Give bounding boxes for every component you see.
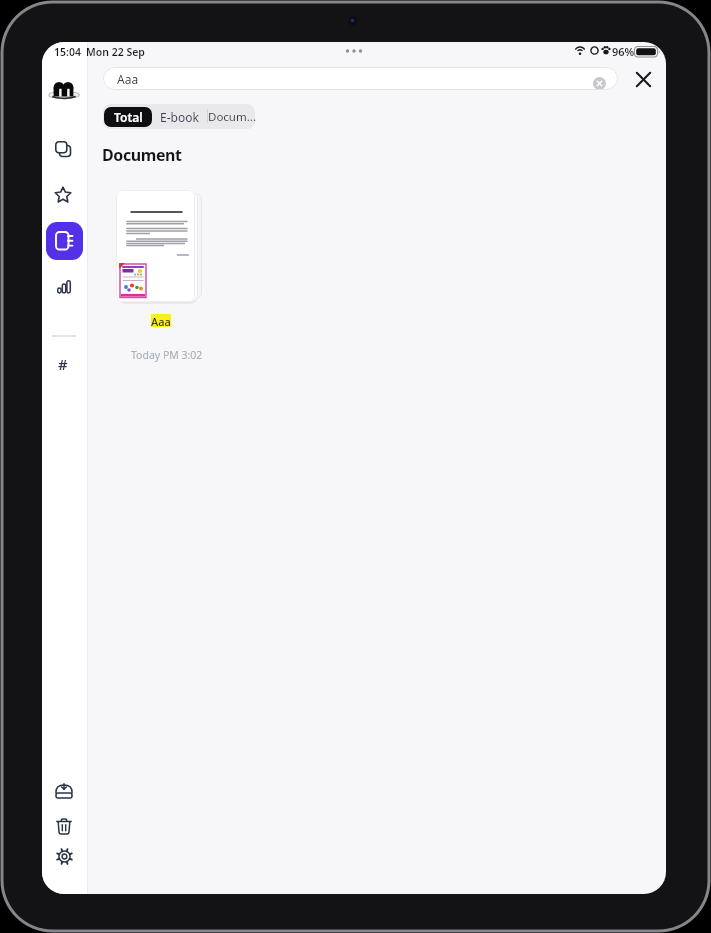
- staticText: 96%: [612, 44, 635, 59]
- button[interactable]: #: [58, 354, 68, 374]
- staticText: Document: [102, 144, 182, 166]
- button[interactable]: [46, 222, 83, 260]
- button[interactable]: [48, 80, 81, 100]
- button[interactable]: [55, 783, 73, 799]
- staticText: Total: [114, 109, 143, 125]
- button[interactable]: [56, 818, 72, 835]
- button[interactable]: Docum...: [205, 104, 259, 129]
- staticText: Docum...: [208, 109, 256, 125]
- staticText: 15:04: [54, 45, 81, 59]
- button[interactable]: [57, 280, 72, 294]
- button[interactable]: [636, 72, 651, 87]
- staticText: E-book: [160, 109, 199, 125]
- staticText: Today PM 3:02: [131, 348, 203, 362]
- staticText: Mon 22 Sep: [86, 45, 145, 59]
- button[interactable]: [116, 190, 195, 302]
- staticText: Aaa: [151, 314, 171, 327]
- button[interactable]: Total: [104, 107, 152, 127]
- button[interactable]: E-book: [154, 104, 204, 129]
- button[interactable]: Aaa: [103, 67, 618, 90]
- button[interactable]: [54, 186, 72, 204]
- staticText: Aaa: [117, 71, 139, 87]
- button[interactable]: [56, 848, 73, 865]
- button[interactable]: Aaa: [151, 314, 171, 327]
- button[interactable]: [55, 141, 72, 158]
